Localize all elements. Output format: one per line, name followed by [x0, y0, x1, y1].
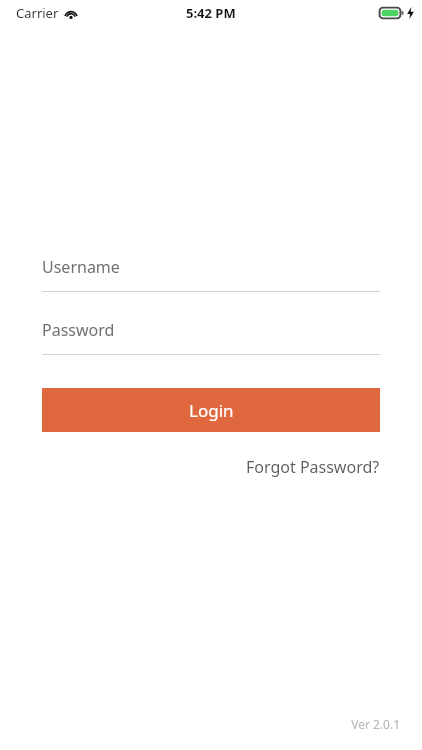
button[interactable]: Password: [42, 315, 380, 355]
button[interactable]: Forgot Password?: [246, 452, 380, 482]
staticText: Ver 2.0.1: [351, 716, 400, 732]
staticText: Carrier: [16, 4, 59, 22]
staticText: 5:42 PM: [186, 4, 236, 22]
staticText: Password: [42, 319, 115, 341]
staticText: Username: [42, 256, 120, 278]
button[interactable]: Login: [42, 388, 380, 432]
staticText: Forgot Password?: [246, 456, 380, 478]
button[interactable]: Username: [42, 252, 380, 292]
staticText: Login: [189, 399, 234, 422]
